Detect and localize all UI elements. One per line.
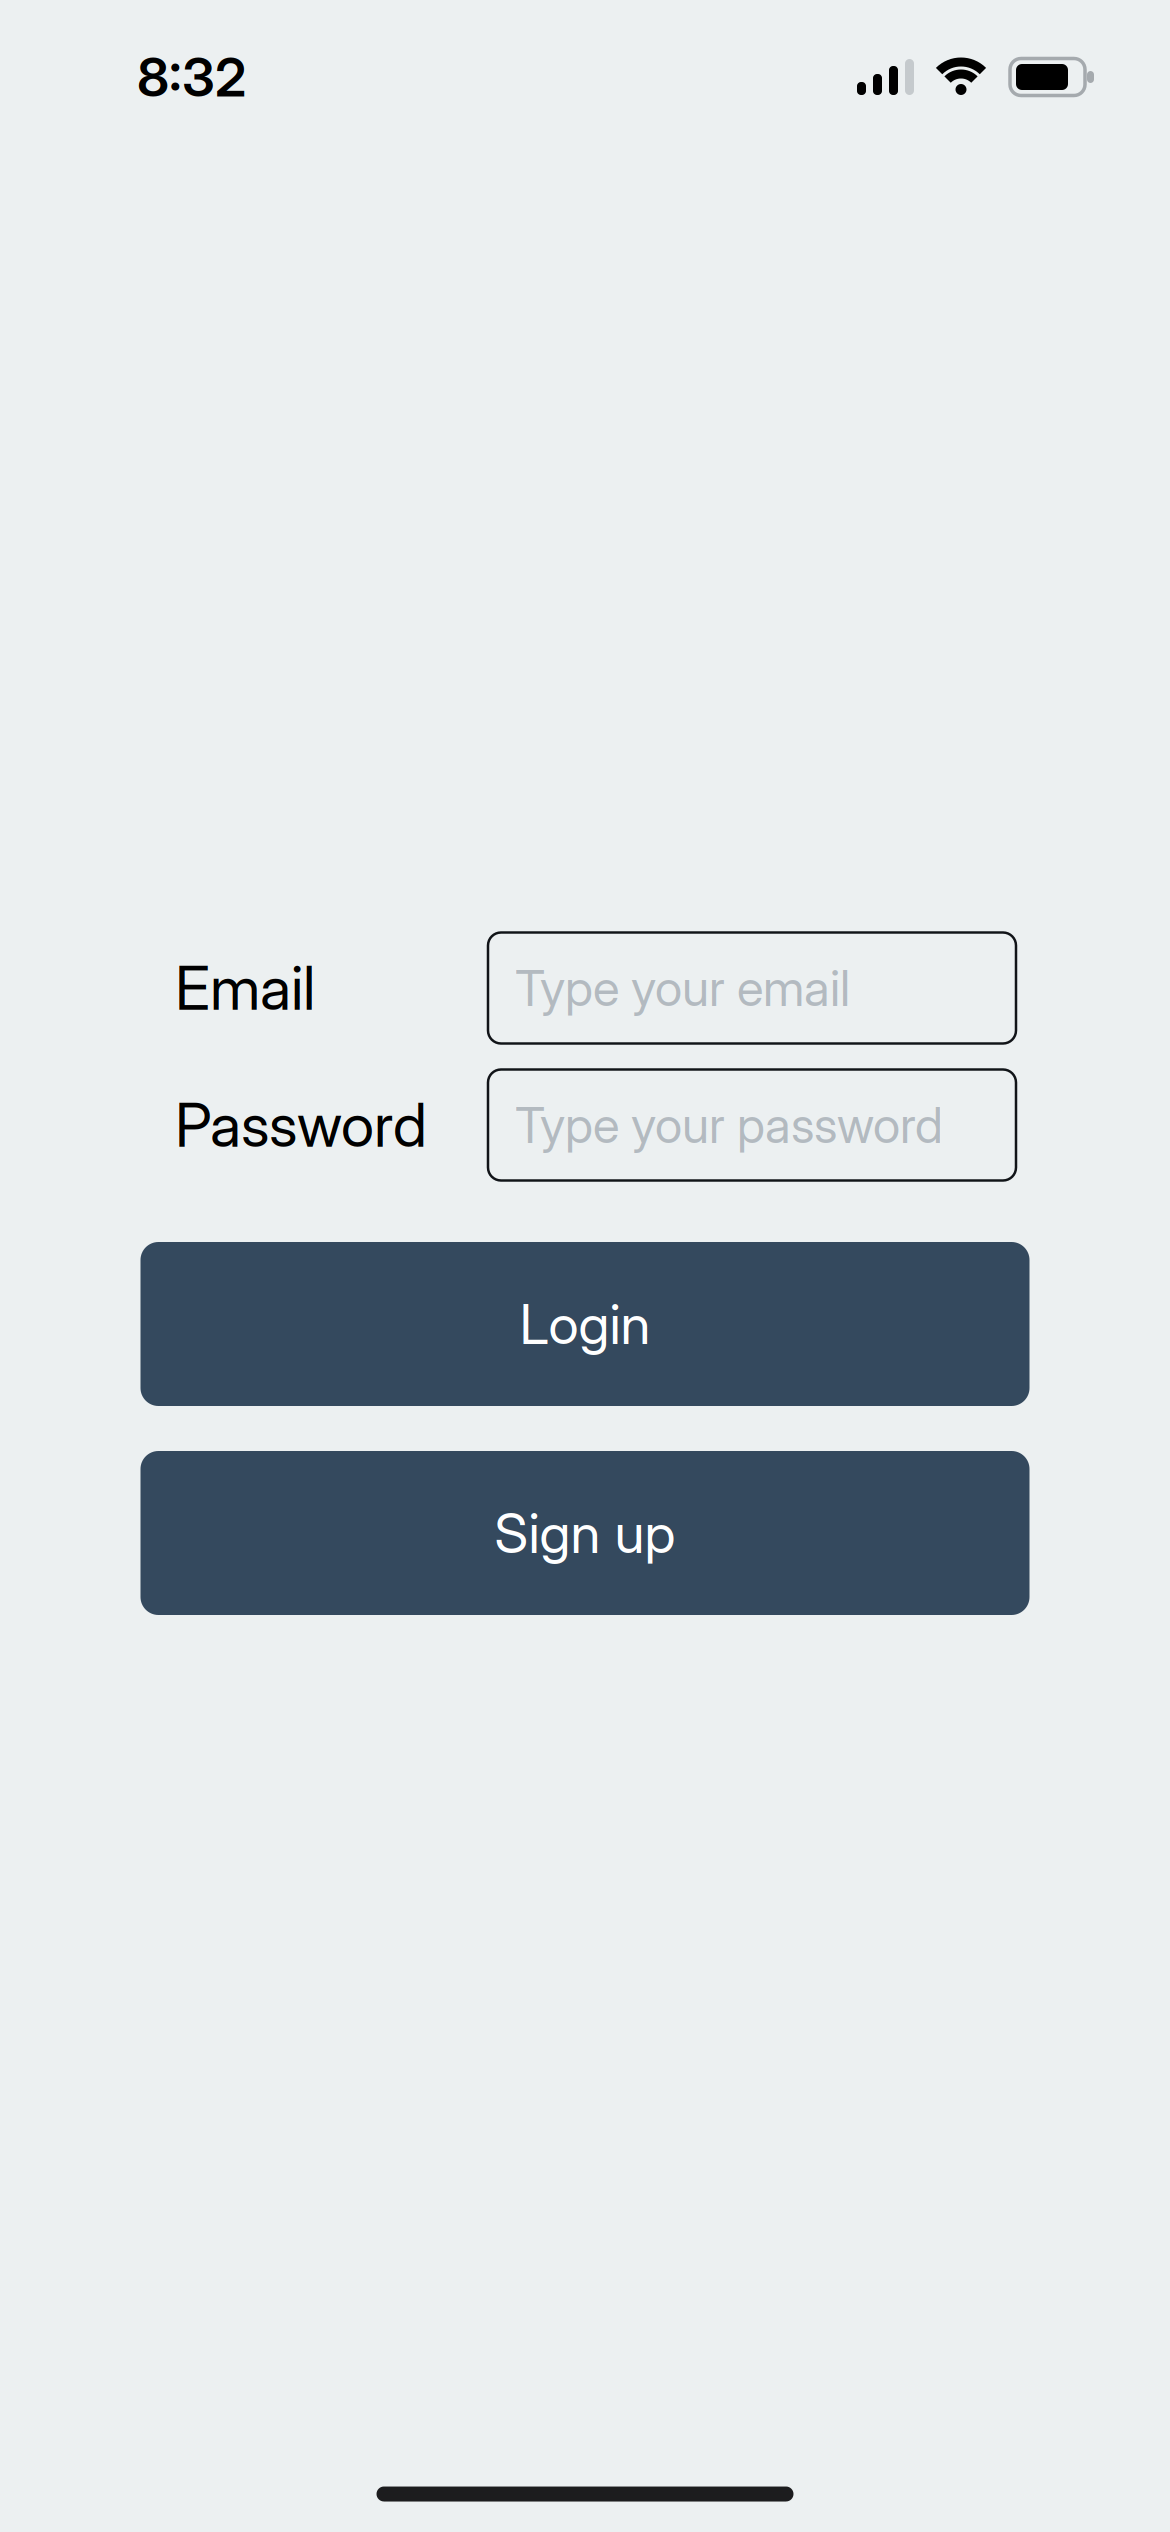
staticText: 8:32 [137,45,246,108]
button[interactable]: Sign up [140,1451,1029,1615]
staticText: Login [519,1292,650,1356]
button[interactable]: Type your password [488,1069,1016,1180]
button[interactable]: Login [140,1242,1029,1406]
staticText: Password [175,1090,427,1160]
staticText: Sign up [494,1501,675,1565]
staticText: Type your password [515,1096,943,1154]
staticText: Email [175,953,315,1023]
button[interactable]: Type your email [488,932,1016,1043]
staticText: Type your email [515,959,850,1017]
